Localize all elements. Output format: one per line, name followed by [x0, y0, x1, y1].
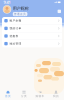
staticText: 分类 [21, 94, 27, 98]
button[interactable]: 账户余额 [2, 17, 62, 24]
button[interactable]: 优惠券 [2, 32, 62, 40]
staticText: 首页 [5, 94, 11, 98]
staticText: 普通会员 [14, 12, 26, 16]
button[interactable]: 我的 [48, 88, 64, 100]
staticText: 我的订单 [9, 27, 21, 30]
button[interactable]: Scan [58, 5, 61, 13]
staticText: 账户余额 [9, 19, 21, 22]
staticText: 购物车 [35, 94, 44, 98]
staticText: 优惠券 [9, 34, 18, 38]
button[interactable]: 我的订单 [2, 25, 62, 32]
staticText: 地址管理 [9, 42, 21, 45]
staticText: 我的 [53, 94, 59, 98]
staticText: 用户昵称 [13, 6, 29, 11]
button[interactable]: 首页 [0, 88, 16, 100]
button[interactable]: 购物车 [32, 88, 48, 100]
button[interactable]: 分类 [16, 88, 32, 100]
staticText: 9:41 [3, 0, 10, 5]
button[interactable]: 地址管理 [2, 40, 62, 47]
